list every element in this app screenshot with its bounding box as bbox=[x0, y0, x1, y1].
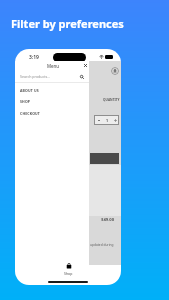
staticText: SHOP bbox=[20, 99, 31, 104]
staticText: Menu bbox=[47, 63, 60, 69]
staticText: updated during bbox=[90, 243, 114, 247]
staticText: Search products... bbox=[20, 74, 51, 79]
staticText: QUANTITY bbox=[103, 98, 120, 102]
button[interactable]: Increase quantity bbox=[111, 115, 119, 125]
button[interactable]: CHECKOUT bbox=[15, 107, 89, 119]
staticText: ABOUT US bbox=[20, 88, 39, 93]
staticText: Shop bbox=[64, 271, 73, 276]
button[interactable]: ABOUT US bbox=[15, 84, 89, 96]
staticText: 1 bbox=[106, 118, 109, 123]
staticText: 3:19 bbox=[29, 54, 39, 61]
button[interactable]: Decrease quantity bbox=[94, 115, 103, 125]
button[interactable]: Close menu bbox=[81, 61, 90, 70]
staticText: Filter by preferences bbox=[11, 16, 124, 31]
button[interactable]: SHOP bbox=[15, 95, 89, 107]
staticText: $49.00 bbox=[101, 217, 115, 223]
button[interactable]: Account bbox=[111, 67, 119, 75]
staticText: CHECKOUT bbox=[20, 111, 41, 116]
button[interactable]: Shop bbox=[58, 262, 79, 277]
button[interactable]: Search bbox=[80, 75, 84, 79]
